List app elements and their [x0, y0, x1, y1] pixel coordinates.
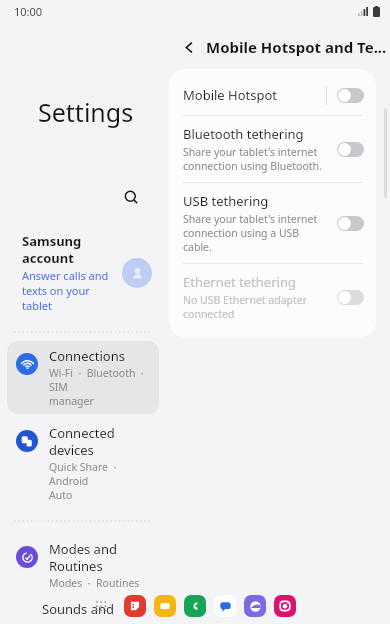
- staticText: Share your tablet's internet connection …: [183, 145, 322, 173]
- staticText: Samsung account: [22, 232, 82, 267]
- staticText: Share your tablet's internet connection …: [183, 212, 329, 254]
- button[interactable]: Instagram: [274, 595, 296, 617]
- button[interactable]: Toggle: [337, 216, 364, 231]
- staticText: Modes · Routines: [49, 576, 140, 590]
- button[interactable]: Toggle: [337, 88, 364, 103]
- button[interactable]: Connections: [7, 341, 159, 414]
- staticText: Quick Share · Android Auto: [49, 460, 153, 502]
- button[interactable]: Samsung Notes: [124, 595, 146, 617]
- button[interactable]: Connected devices: [7, 418, 159, 508]
- staticText: USB tethering: [183, 192, 269, 210]
- staticText: Wi-Fi · Bluetooth · SIM manager: [49, 366, 153, 408]
- button[interactable]: Samsung account: [0, 230, 166, 315]
- button[interactable]: Phone: [184, 595, 206, 617]
- button[interactable]: USB tethering: [169, 183, 376, 263]
- staticText: Sounds and: [42, 600, 114, 618]
- staticText: No USB Ethernet adapter connected: [183, 293, 329, 321]
- button[interactable]: Messages: [214, 595, 236, 617]
- button[interactable]: Ethernet tethering: [169, 264, 376, 330]
- button[interactable]: Internet: [244, 595, 266, 617]
- staticText: Ethernet tethering: [183, 273, 296, 291]
- staticText: Mobile Hotspot and Te...: [206, 37, 387, 57]
- button[interactable]: Sounds and: [0, 598, 166, 618]
- staticText: Mobile Hotspot: [183, 86, 326, 104]
- staticText: Modes and Routines: [49, 540, 117, 575]
- staticText: Answer calls and texts on your tablet: [22, 268, 109, 313]
- button[interactable]: Search settings: [118, 184, 144, 210]
- staticText: Connected devices: [49, 424, 153, 459]
- staticText: Bluetooth tethering: [183, 125, 304, 143]
- staticText: Settings: [38, 95, 134, 129]
- button[interactable]: Mobile Hotspot: [169, 75, 376, 115]
- button[interactable]: Modes and Routines: [7, 534, 159, 596]
- button[interactable]: Bluetooth tethering: [169, 116, 376, 182]
- staticText: Connections: [49, 347, 125, 365]
- button[interactable]: My Files: [154, 595, 176, 617]
- button[interactable]: All apps: [90, 595, 112, 617]
- button[interactable]: Toggle: [337, 290, 364, 305]
- staticText: 10:00: [14, 4, 43, 19]
- button[interactable]: Navigate up: [176, 34, 202, 60]
- button[interactable]: Toggle: [337, 142, 364, 157]
